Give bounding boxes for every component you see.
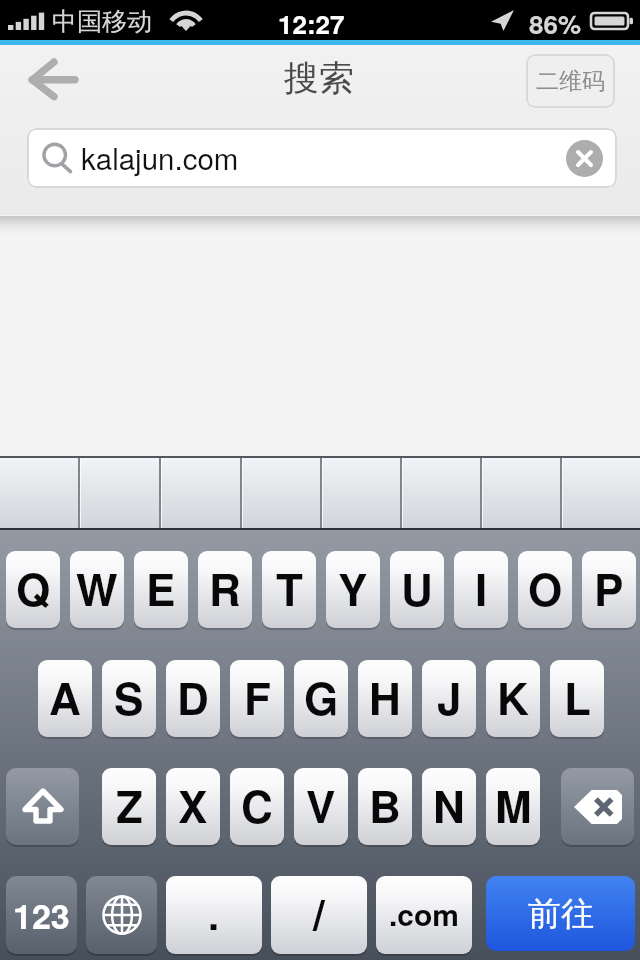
- staticText: G: [304, 665, 339, 728]
- button[interactable]: Q: [6, 551, 60, 628]
- staticText: S: [114, 665, 144, 728]
- staticText: 中国移动: [52, 6, 152, 37]
- staticText: B: [369, 773, 401, 836]
- staticText: 12:27: [278, 5, 345, 42]
- button[interactable]: Backspace: [561, 768, 634, 845]
- staticText: T: [276, 556, 303, 619]
- button[interactable]: Numbers: [6, 876, 77, 954]
- button[interactable]: B: [358, 768, 412, 845]
- staticText: .: [208, 885, 220, 942]
- staticText: 前往: [528, 893, 594, 935]
- button[interactable]: T: [262, 551, 316, 628]
- staticText: 123: [13, 891, 70, 940]
- staticText: A: [49, 665, 81, 728]
- button[interactable]: V: [294, 768, 348, 845]
- button[interactable]: [323, 456, 400, 530]
- staticText: U: [401, 556, 433, 619]
- button[interactable]: R: [198, 551, 252, 628]
- staticText: Y: [338, 556, 368, 619]
- button[interactable]: [243, 456, 320, 530]
- button[interactable]: 二维码: [526, 54, 615, 108]
- staticText: O: [528, 556, 563, 619]
- staticText: J: [437, 665, 462, 728]
- staticText: Q: [16, 556, 51, 619]
- staticText: V: [306, 773, 336, 836]
- button[interactable]: H: [358, 660, 412, 737]
- button[interactable]: [162, 456, 240, 530]
- staticText: X: [178, 773, 208, 836]
- button[interactable]: [563, 456, 640, 530]
- staticText: L: [564, 665, 591, 728]
- button[interactable]: Clear text: [566, 140, 603, 177]
- button[interactable]: Back: [8, 45, 100, 117]
- button[interactable]: U: [390, 551, 444, 628]
- staticText: E: [146, 556, 176, 619]
- staticText: K: [497, 665, 529, 728]
- button[interactable]: G: [294, 660, 348, 737]
- button[interactable]: J: [422, 660, 476, 737]
- button[interactable]: P: [582, 551, 636, 628]
- button[interactable]: kalajun.com: [27, 128, 617, 188]
- button[interactable]: N: [422, 768, 476, 845]
- staticText: H: [369, 665, 401, 728]
- button[interactable]: E: [134, 551, 188, 628]
- button[interactable]: [403, 456, 480, 530]
- staticText: M: [495, 773, 532, 836]
- button[interactable]: S: [102, 660, 156, 737]
- button[interactable]: D: [166, 660, 220, 737]
- button[interactable]: .: [166, 876, 262, 954]
- button[interactable]: Z: [102, 768, 156, 845]
- staticText: /: [313, 883, 325, 943]
- button[interactable]: Y: [326, 551, 380, 628]
- staticText: C: [241, 773, 273, 836]
- button[interactable]: I: [454, 551, 508, 628]
- staticText: W: [76, 556, 118, 619]
- staticText: D: [177, 665, 209, 728]
- staticText: 二维码: [536, 67, 605, 96]
- button[interactable]: L: [550, 660, 604, 737]
- button[interactable]: .com: [376, 876, 472, 954]
- staticText: N: [433, 773, 465, 836]
- button[interactable]: Shift: [6, 768, 79, 845]
- staticText: 86%: [529, 5, 582, 42]
- button[interactable]: W: [70, 551, 124, 628]
- button[interactable]: /: [271, 876, 367, 954]
- staticText: R: [209, 556, 241, 619]
- staticText: I: [475, 556, 488, 619]
- button[interactable]: F: [230, 660, 284, 737]
- button[interactable]: O: [518, 551, 572, 628]
- staticText: kalajun.com: [81, 136, 239, 178]
- button[interactable]: 前往: [486, 876, 635, 951]
- button[interactable]: [0, 456, 78, 530]
- staticText: .com: [389, 892, 460, 935]
- button[interactable]: X: [166, 768, 220, 845]
- button[interactable]: [483, 456, 560, 530]
- button[interactable]: K: [486, 660, 540, 737]
- staticText: P: [594, 556, 624, 619]
- staticText: F: [244, 665, 271, 728]
- button[interactable]: A: [38, 660, 92, 737]
- button[interactable]: [81, 456, 159, 530]
- button[interactable]: C: [230, 768, 284, 845]
- button[interactable]: Switch keyboard: [86, 876, 157, 954]
- button[interactable]: M: [486, 768, 540, 845]
- staticText: Z: [116, 773, 143, 836]
- staticText: 搜索: [284, 56, 354, 100]
